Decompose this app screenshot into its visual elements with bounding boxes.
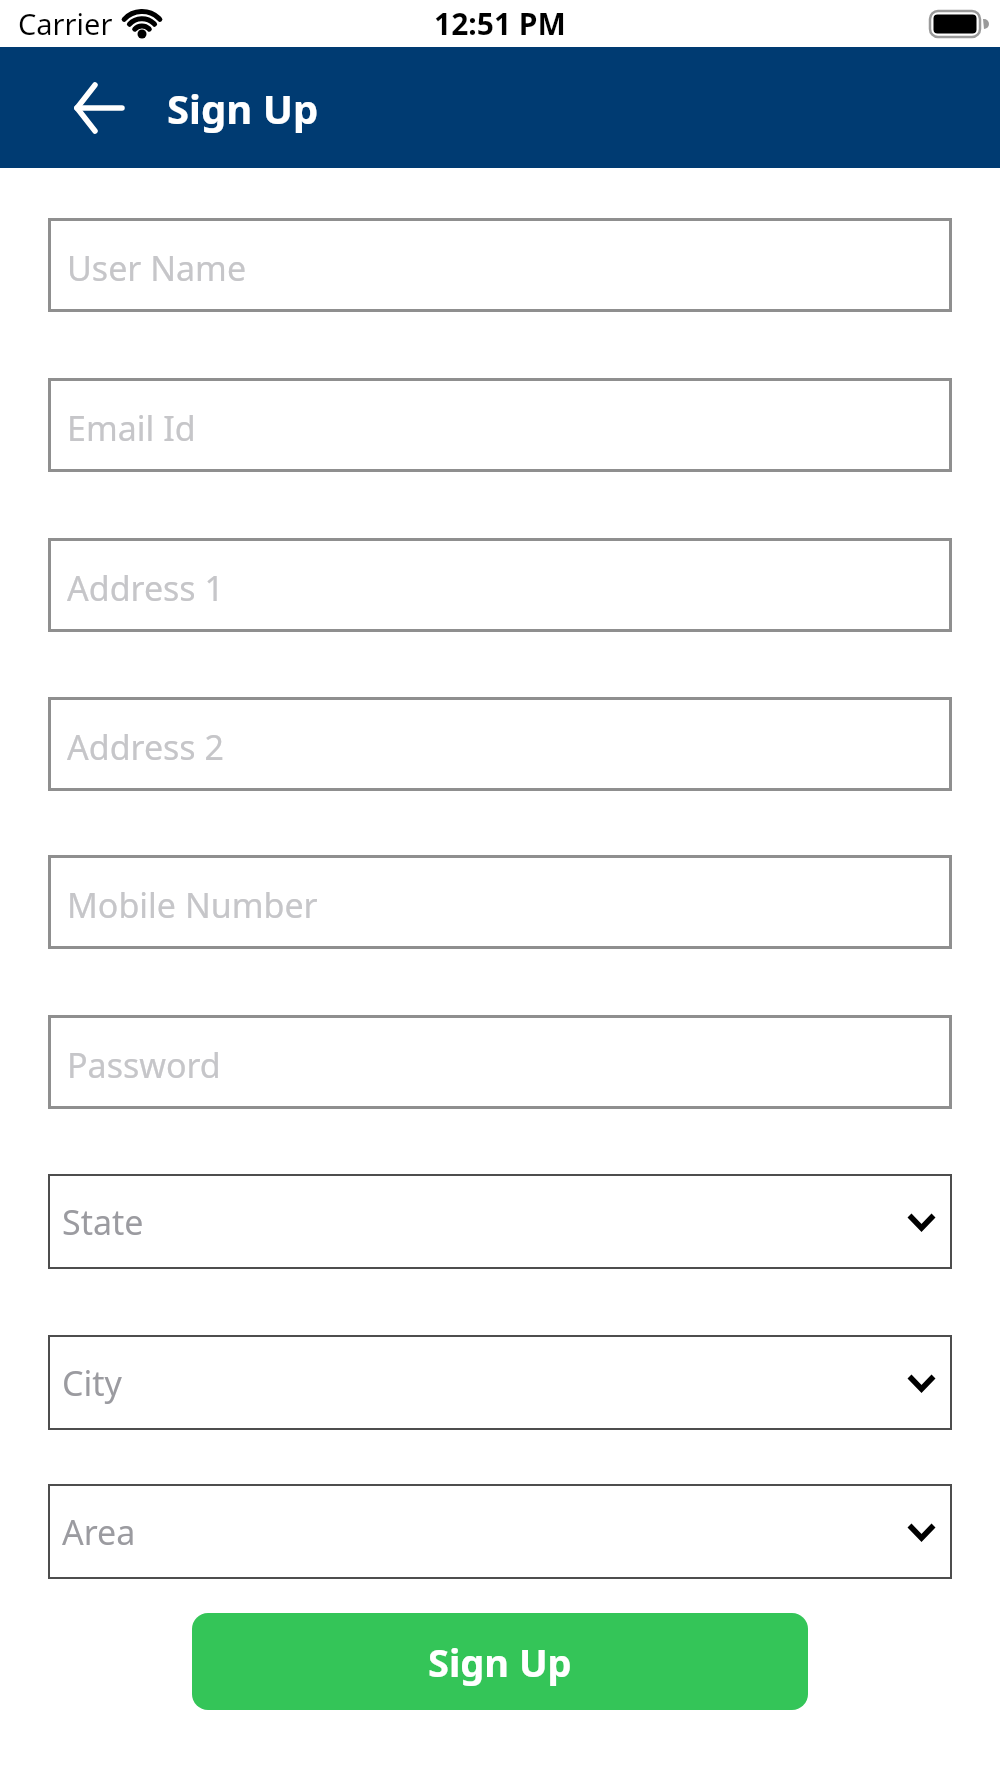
button[interactable]: State [48, 1174, 952, 1269]
button[interactable] [75, 82, 125, 134]
button[interactable]: Mobile Number [48, 855, 952, 949]
staticText: Mobile Number [67, 882, 318, 928]
staticText: Carrier [18, 4, 113, 43]
staticText: Sign Up [167, 81, 319, 135]
button[interactable]: City [48, 1335, 952, 1430]
staticText: Sign Up [428, 1636, 572, 1688]
button[interactable]: User Name [48, 218, 952, 312]
staticText: Address 2 [67, 724, 224, 770]
staticText: Password [67, 1042, 221, 1088]
staticText: User Name [67, 245, 247, 291]
button[interactable]: Password [48, 1015, 952, 1109]
staticText: Email Id [67, 405, 196, 451]
button[interactable]: Address 2 [48, 697, 952, 791]
button[interactable]: Address 1 [48, 538, 952, 632]
button[interactable]: Area [48, 1484, 952, 1579]
staticText: City [62, 1360, 122, 1406]
staticText: Area [62, 1509, 136, 1555]
button[interactable]: Email Id [48, 378, 952, 472]
button[interactable]: Sign Up [192, 1613, 808, 1710]
staticText: 12:51 PM [434, 3, 566, 44]
staticText: State [62, 1199, 144, 1245]
staticText: Address 1 [67, 565, 224, 611]
